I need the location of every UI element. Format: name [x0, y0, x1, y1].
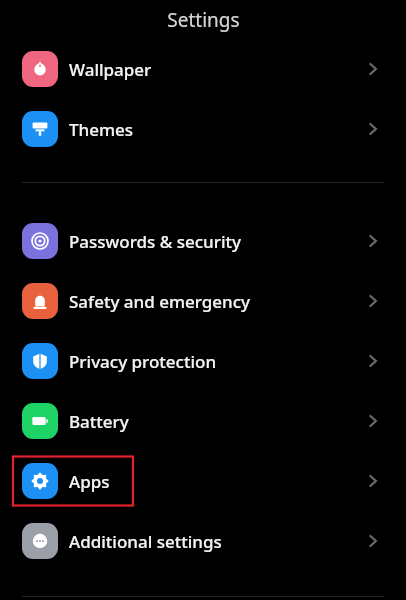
button[interactable]: Themes [0, 99, 406, 159]
button[interactable]: Battery [0, 391, 406, 451]
staticText: Passwords & security [69, 230, 242, 253]
button[interactable]: Passwords & security [0, 211, 406, 271]
staticText: Wallpaper [69, 58, 152, 81]
button[interactable]: Apps [0, 451, 406, 511]
staticText: Additional settings [69, 530, 222, 553]
button[interactable]: Additional settings [0, 511, 406, 571]
staticText: Apps [69, 470, 110, 493]
staticText: Safety and emergency [69, 290, 251, 313]
staticText: Battery [69, 410, 129, 433]
staticText: Settings [167, 7, 240, 33]
staticText: Themes [69, 118, 134, 141]
staticText: Privacy protection [69, 350, 217, 373]
button[interactable]: Privacy protection [0, 331, 406, 391]
button[interactable]: Safety and emergency [0, 271, 406, 331]
button[interactable]: Wallpaper [0, 39, 406, 99]
